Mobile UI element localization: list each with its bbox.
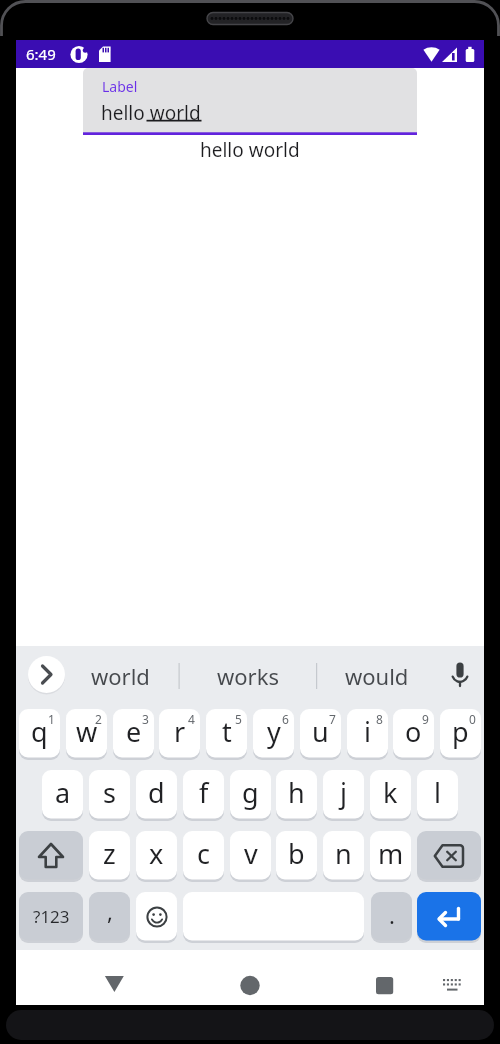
staticText: v [244,835,258,872]
button[interactable]: . [371,892,412,941]
button[interactable]: r [159,709,200,758]
button[interactable]: v [230,831,271,880]
staticText: k [383,774,398,811]
button[interactable]: w [66,709,107,758]
staticText: c [197,835,210,872]
button[interactable]: e [113,709,154,758]
button[interactable]: a [42,770,83,819]
staticText: x [149,835,164,872]
button[interactable]: s [89,770,130,819]
staticText: t [222,713,232,750]
button[interactable]: d [136,770,177,819]
staticText: 0 [469,711,476,727]
staticText: f [199,774,209,811]
staticText: 7 [329,711,336,727]
staticText: m [378,835,404,872]
staticText: s [103,774,116,811]
staticText: y [267,713,281,750]
staticText: 9 [422,711,429,727]
staticText: , [107,896,113,926]
button[interactable]: j [323,770,364,819]
staticText: i [364,713,371,750]
staticText: 8 [376,711,383,727]
staticText: hello world [200,137,300,163]
button[interactable]: q [19,709,60,758]
staticText: ?123 [33,905,70,928]
button[interactable]: i [347,709,388,758]
button[interactable]: p [440,709,481,758]
button[interactable]: m [370,831,411,880]
button[interactable]: t [206,709,247,758]
button[interactable] [417,892,481,941]
staticText: l [434,774,441,811]
button[interactable]: h [276,770,317,819]
staticText: o [405,713,422,750]
staticText: would [345,661,409,691]
staticText: . [389,900,395,930]
button[interactable] [136,892,177,941]
button[interactable]: b [276,831,317,880]
button[interactable] [93,963,135,999]
staticText: b [288,835,305,872]
button[interactable]: works [193,650,303,702]
staticText: a [55,774,71,811]
staticText: e [126,713,142,750]
staticText: hello world [101,100,201,126]
button[interactable]: f [183,770,224,819]
staticText: works [217,661,279,691]
button[interactable]: n [323,831,364,880]
staticText: w [76,713,98,750]
staticText: 3 [142,711,149,727]
button[interactable]: x [136,831,177,880]
staticText: u [312,713,329,750]
button[interactable]: o [393,709,434,758]
staticText: 5 [235,711,242,727]
staticText: 4 [188,711,195,727]
button[interactable]: k [370,770,411,819]
staticText: r [174,713,186,750]
staticText: world [91,661,150,691]
staticText: q [31,713,48,750]
button[interactable] [440,656,480,696]
staticText: 1 [48,711,55,727]
button[interactable]: Label [83,68,417,135]
staticText: g [242,774,259,811]
button[interactable]: y [253,709,294,758]
button[interactable]: ?123 [19,892,83,941]
button[interactable] [417,831,481,880]
button[interactable]: c [183,831,224,880]
button[interactable] [229,963,271,999]
staticText: Label [102,77,138,96]
button[interactable]: u [300,709,341,758]
staticText: z [103,835,116,872]
staticText: 6:49 [26,44,56,64]
button[interactable] [364,963,406,999]
staticText: h [288,774,305,811]
button[interactable]: z [89,831,130,880]
staticText: 2 [95,711,102,727]
staticText: 6 [282,711,289,727]
button[interactable]: , [89,892,130,941]
button[interactable] [28,656,65,693]
button[interactable]: would [322,650,432,702]
button[interactable] [19,831,83,880]
button[interactable]: l [417,770,458,819]
staticText: p [452,713,469,750]
staticText: d [148,774,165,811]
button[interactable] [436,963,478,999]
button[interactable]: world [65,650,175,702]
button[interactable]: g [230,770,271,819]
button[interactable] [183,892,364,941]
staticText: n [335,835,352,872]
staticText: j [340,774,347,811]
